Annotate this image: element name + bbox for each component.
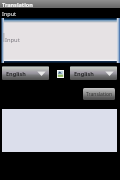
staticText: English (74, 70, 94, 77)
staticText: Translation (86, 91, 113, 98)
button[interactable]: English (2, 66, 49, 80)
staticText: English (6, 70, 26, 77)
button[interactable]: Input (1, 18, 120, 63)
button[interactable]: Swap languages (57, 70, 64, 78)
button[interactable]: English (70, 66, 117, 80)
staticText: Input (2, 10, 120, 17)
button[interactable]: Translation (83, 88, 115, 100)
staticText: Translation (2, 1, 33, 8)
staticText: Input (5, 36, 20, 44)
